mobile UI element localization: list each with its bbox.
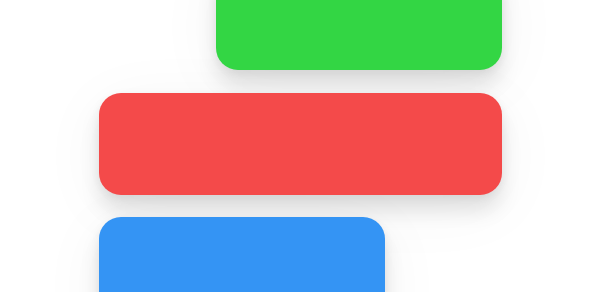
button[interactable]: Blue tile bbox=[99, 217, 385, 292]
button[interactable]: Green tile bbox=[216, 0, 502, 70]
button[interactable]: Red tile bbox=[99, 93, 502, 195]
